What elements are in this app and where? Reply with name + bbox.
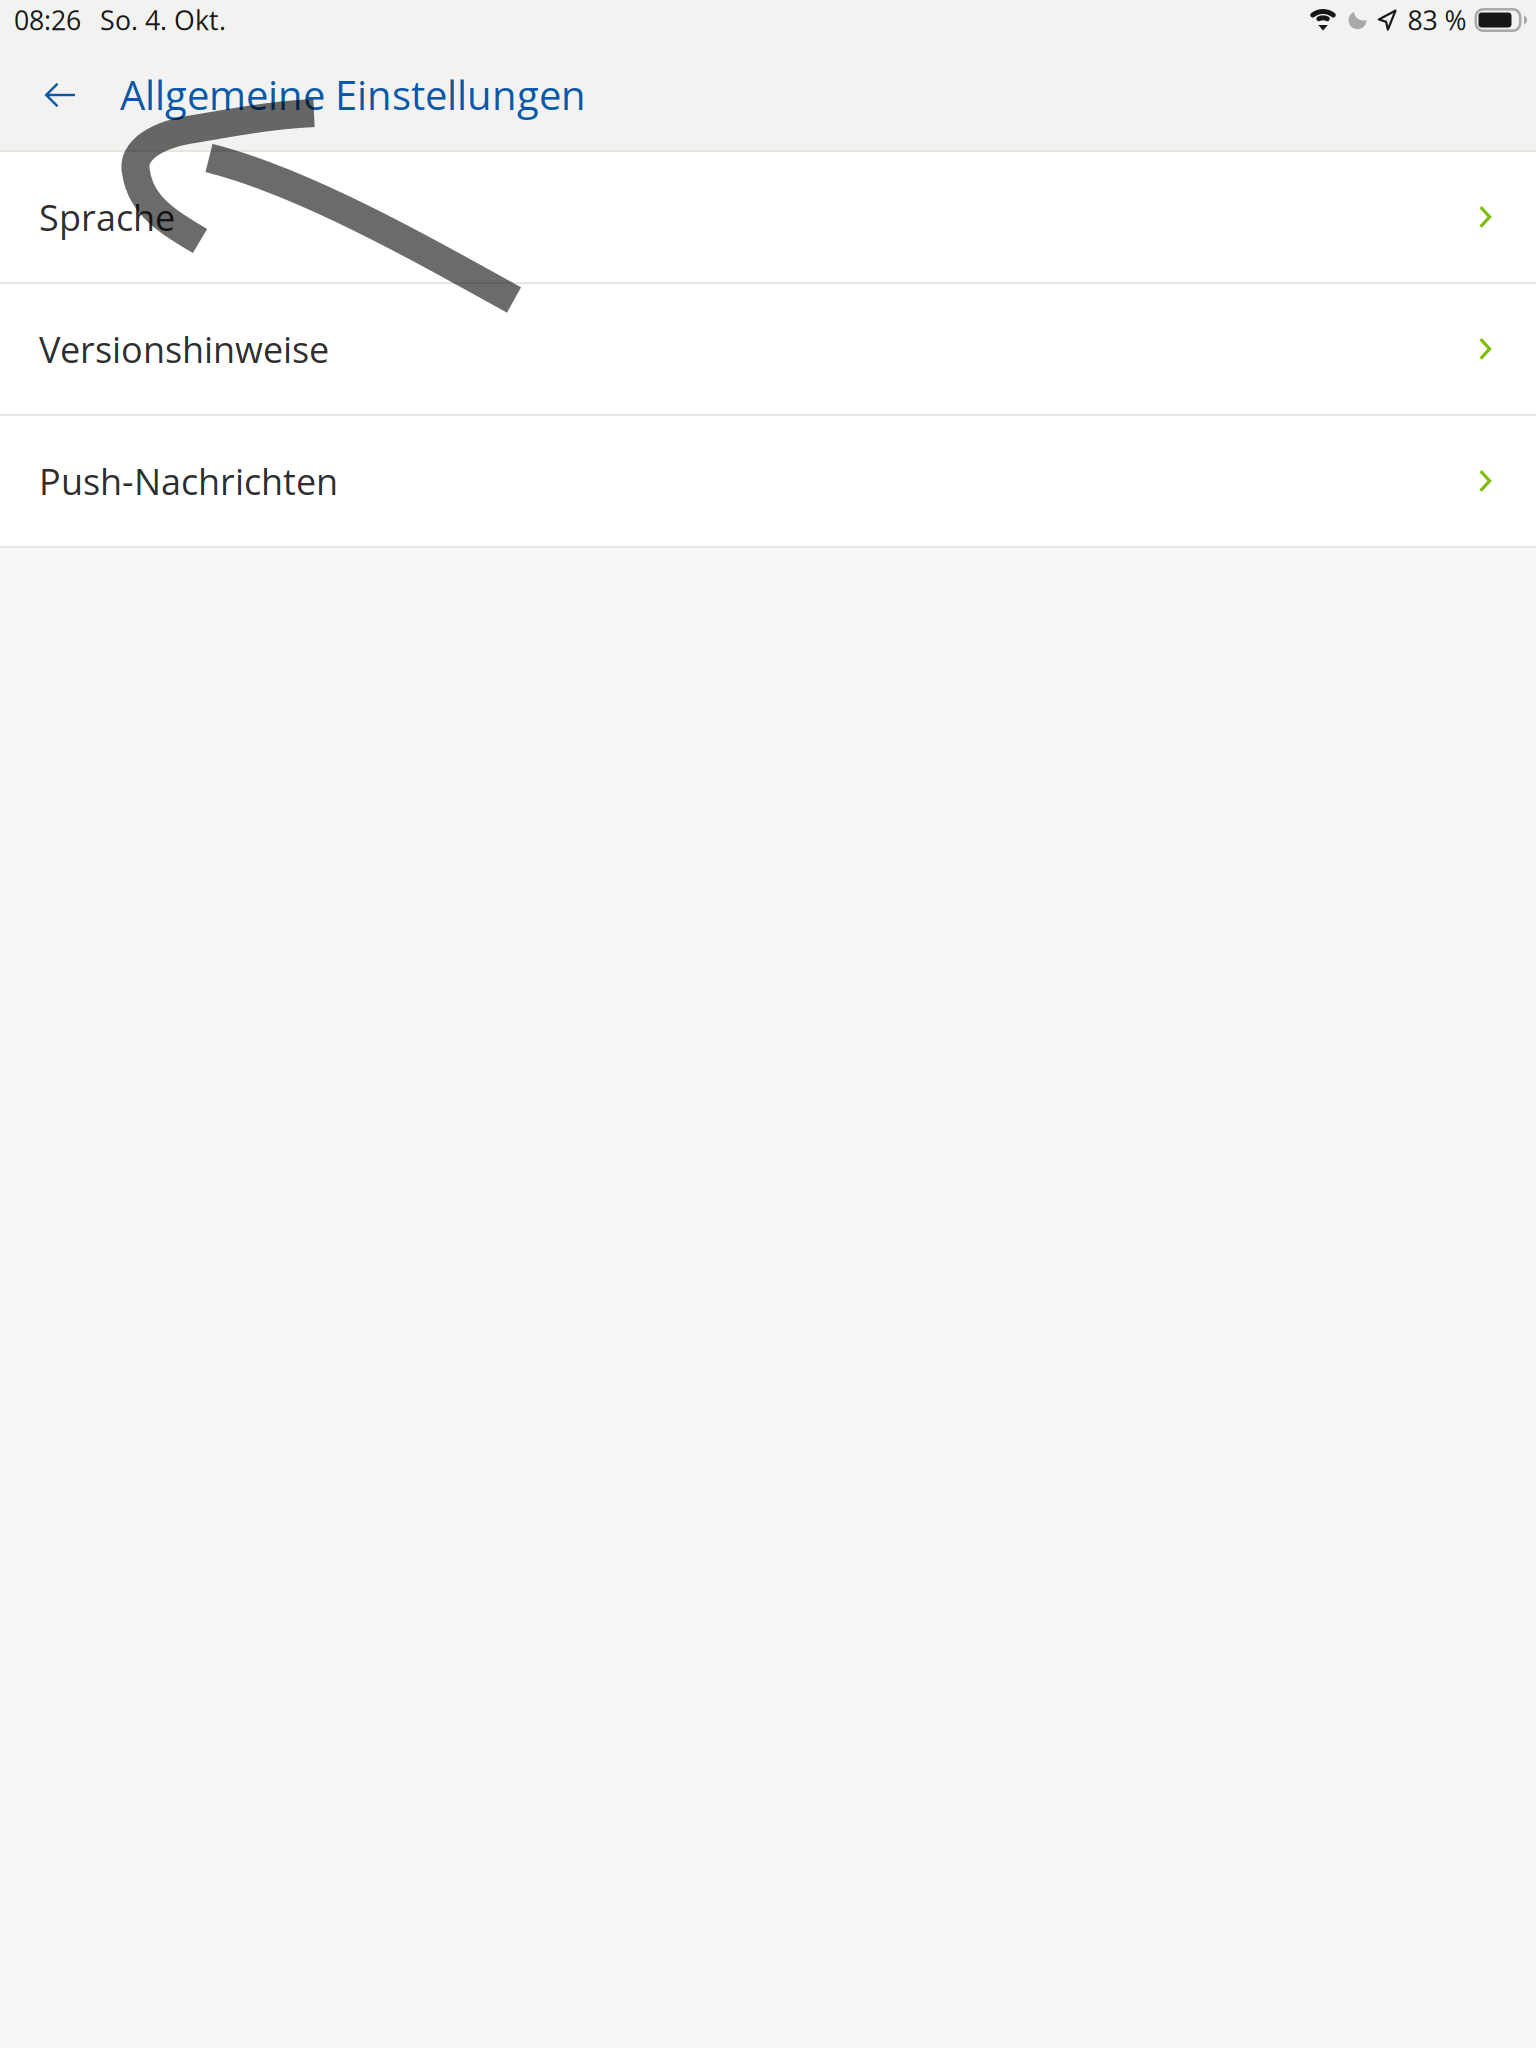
staticText: 83 % bbox=[1407, 2, 1466, 38]
button[interactable]: Zurück bbox=[0, 40, 106, 150]
staticText: Versionshinweise bbox=[39, 324, 329, 373]
staticText: 08:26 bbox=[14, 2, 81, 38]
staticText: Sprache bbox=[39, 192, 175, 241]
button[interactable]: Versionshinweise bbox=[0, 284, 1536, 414]
staticText: So. 4. Okt. bbox=[100, 2, 226, 38]
button[interactable]: Push-Nachrichten bbox=[0, 416, 1536, 546]
button[interactable]: Sprache bbox=[0, 152, 1536, 282]
staticText: Push-Nachrichten bbox=[39, 456, 338, 505]
staticText: Allgemeine Einstellungen bbox=[120, 67, 586, 122]
